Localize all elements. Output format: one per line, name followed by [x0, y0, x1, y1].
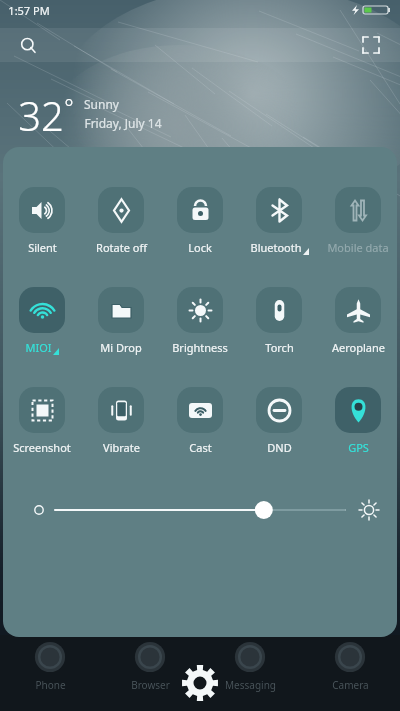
button[interactable]: Bluetooth	[243, 187, 315, 255]
staticText: Bluetooth	[250, 240, 302, 255]
staticText: DND	[267, 440, 292, 455]
button[interactable]	[3, 495, 397, 525]
staticText: Phone	[35, 678, 66, 692]
button[interactable]: Rotate off	[85, 187, 157, 255]
button[interactable]: Lock	[164, 187, 236, 255]
staticText: Sunny	[84, 96, 119, 112]
button[interactable]: Mi Drop	[85, 287, 157, 355]
staticText: Brightness	[172, 340, 228, 355]
staticText: °	[64, 91, 74, 121]
button[interactable]: Vibrate	[85, 387, 157, 455]
staticText: Camera	[332, 678, 369, 692]
staticText: Vibrate	[103, 440, 140, 455]
button[interactable]: DND	[243, 387, 315, 455]
button[interactable]: Screenshot	[6, 387, 78, 455]
button[interactable]: Mobile data	[322, 187, 394, 255]
button[interactable]: Settings	[178, 661, 222, 705]
staticText: Silent	[28, 240, 57, 255]
button[interactable]: Camera	[310, 639, 390, 692]
staticText: Browser	[131, 678, 170, 692]
button[interactable]: Search	[14, 31, 42, 59]
button[interactable]: Torch	[243, 287, 315, 355]
button[interactable]: Browser	[110, 639, 190, 692]
staticText: 1:57 PM	[8, 3, 50, 18]
staticText: GPS	[348, 440, 369, 455]
button[interactable]: GPS	[322, 387, 394, 455]
button[interactable]: 32	[18, 88, 162, 142]
button[interactable]: Brightness	[164, 287, 236, 355]
staticText: 32	[18, 88, 64, 142]
button[interactable]: Scan	[356, 30, 386, 60]
staticText: Cast	[189, 440, 212, 455]
button[interactable]: Phone	[10, 639, 90, 692]
button[interactable]: MIOI	[6, 287, 78, 355]
staticText: MIOI	[25, 340, 52, 355]
button[interactable]: Cast	[164, 387, 236, 455]
staticText: Screenshot	[13, 440, 71, 455]
staticText: Rotate off	[96, 240, 147, 255]
button[interactable]: Messaging	[210, 639, 290, 692]
staticText: Messaging	[225, 678, 276, 692]
staticText: Lock	[188, 240, 212, 255]
button[interactable]: Silent	[6, 187, 78, 255]
staticText: Mobile data	[327, 240, 389, 255]
staticText: Aeroplane	[332, 340, 385, 355]
staticText: Mi Drop	[100, 340, 142, 355]
staticText: Friday, July 14	[84, 115, 162, 131]
button[interactable]: Aeroplane	[322, 287, 394, 355]
staticText: Torch	[265, 340, 294, 355]
